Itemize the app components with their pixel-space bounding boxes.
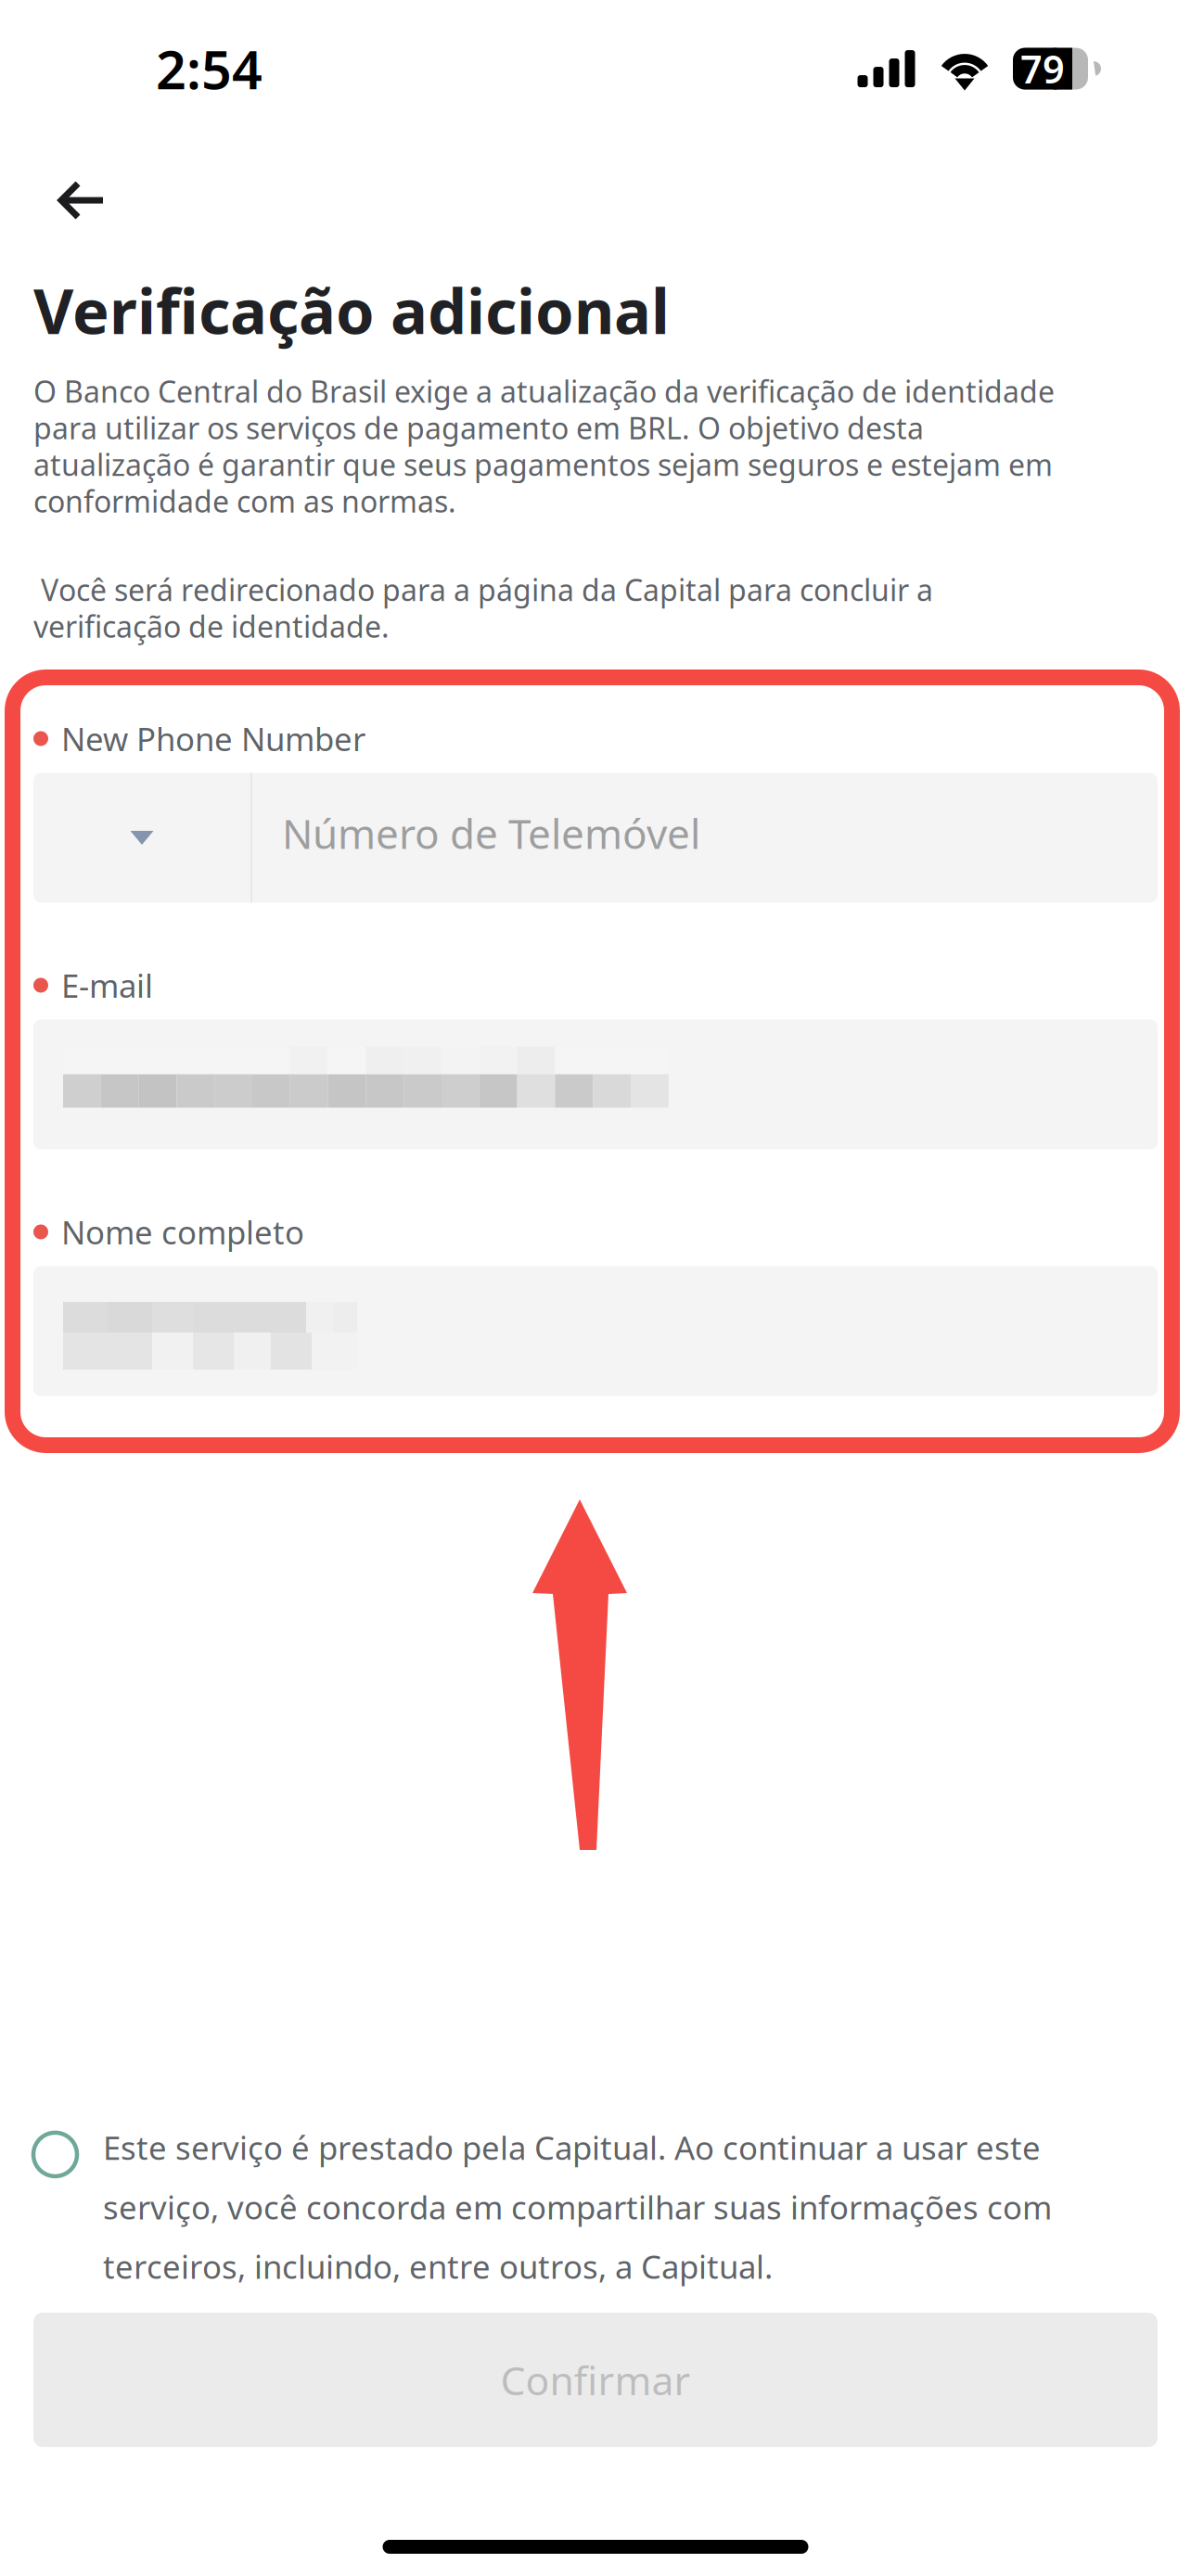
staticText: Você será redirecionado para a página da… bbox=[33, 570, 933, 646]
staticText: Confirmar bbox=[500, 2354, 691, 2406]
button[interactable]: Confirmar bbox=[0, 2313, 1158, 2447]
staticText: Verificação adicional bbox=[33, 269, 670, 351]
staticText: Número de Telemóvel bbox=[282, 806, 700, 860]
staticText: O Banco Central do Brasil exige a atuali… bbox=[33, 371, 1055, 521]
staticText: Este serviço é prestado pela Capitual. A… bbox=[103, 2126, 1052, 2288]
staticText: E-mail bbox=[61, 964, 153, 1007]
button[interactable]: Número de Telemóvel bbox=[33, 773, 1158, 903]
button[interactable] bbox=[33, 1020, 1158, 1149]
staticText: Nome completo bbox=[61, 1211, 304, 1253]
button[interactable]: Este serviço é prestado pela Capitual. A… bbox=[0, 2126, 1191, 2288]
staticText: 79 bbox=[1020, 43, 1065, 94]
staticText: 2:54 bbox=[156, 33, 263, 104]
button[interactable]: Back bbox=[0, 130, 144, 250]
button[interactable] bbox=[33, 1266, 1158, 1396]
staticText: New Phone Number bbox=[61, 717, 365, 760]
